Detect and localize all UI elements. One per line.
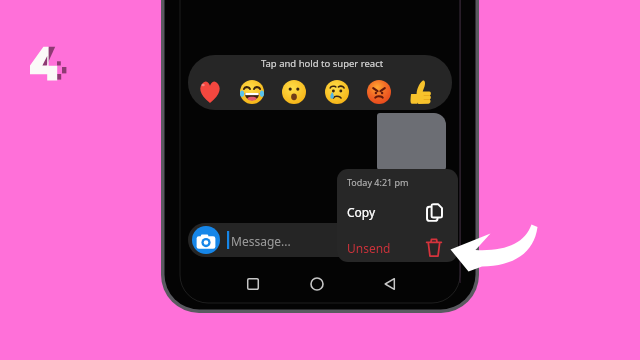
button[interactable] (377, 113, 446, 170)
button[interactable] (188, 55, 452, 110)
button[interactable]: Unsend (337, 230, 458, 262)
button[interactable]: sad reaction (325, 80, 349, 104)
button[interactable]: laugh reaction (240, 80, 264, 104)
button[interactable]: Love reaction (198, 81, 222, 103)
button[interactable]: Back (378, 272, 402, 296)
button[interactable]: Like reaction (410, 80, 432, 105)
staticText: Today 4:21 pm (347, 176, 409, 188)
staticText: Unsend (347, 240, 391, 256)
button[interactable]: Recent apps (241, 272, 265, 296)
button[interactable]: angry reaction (367, 80, 391, 104)
button[interactable]: surprise reaction (282, 80, 306, 104)
button[interactable]: Home (305, 272, 329, 296)
staticText: Copy (347, 204, 376, 220)
button[interactable]: Copy (337, 196, 458, 230)
button[interactable] (188, 223, 378, 257)
staticText: Message... (231, 233, 291, 249)
staticText: Tap and hold to super react (261, 57, 384, 70)
button[interactable]: Open camera (192, 226, 220, 254)
